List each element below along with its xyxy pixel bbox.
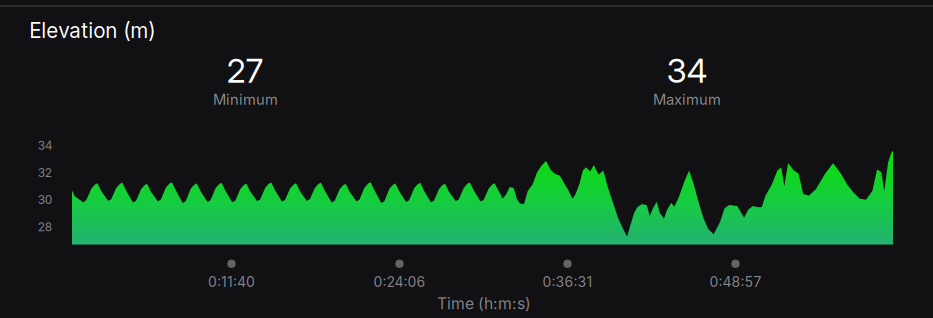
staticText: 30 bbox=[38, 192, 53, 207]
staticText: 0:24:06 bbox=[373, 273, 425, 290]
button[interactable]: Elevation chart bbox=[0, 0, 933, 318]
staticText: 34 bbox=[38, 138, 53, 153]
staticText: 27 bbox=[226, 50, 263, 91]
staticText: Minimum bbox=[213, 91, 278, 108]
staticText: 28 bbox=[38, 219, 52, 234]
staticText: Elevation (m) bbox=[29, 18, 155, 43]
staticText: 34 bbox=[666, 50, 707, 91]
staticText: 0:36:31 bbox=[542, 273, 592, 290]
staticText: 0:48:57 bbox=[709, 273, 761, 290]
staticText: 0:11:40 bbox=[208, 273, 255, 290]
staticText: 32 bbox=[38, 165, 52, 180]
staticText: Time (h:m:s) bbox=[437, 294, 531, 313]
staticText: Maximum bbox=[653, 91, 721, 108]
